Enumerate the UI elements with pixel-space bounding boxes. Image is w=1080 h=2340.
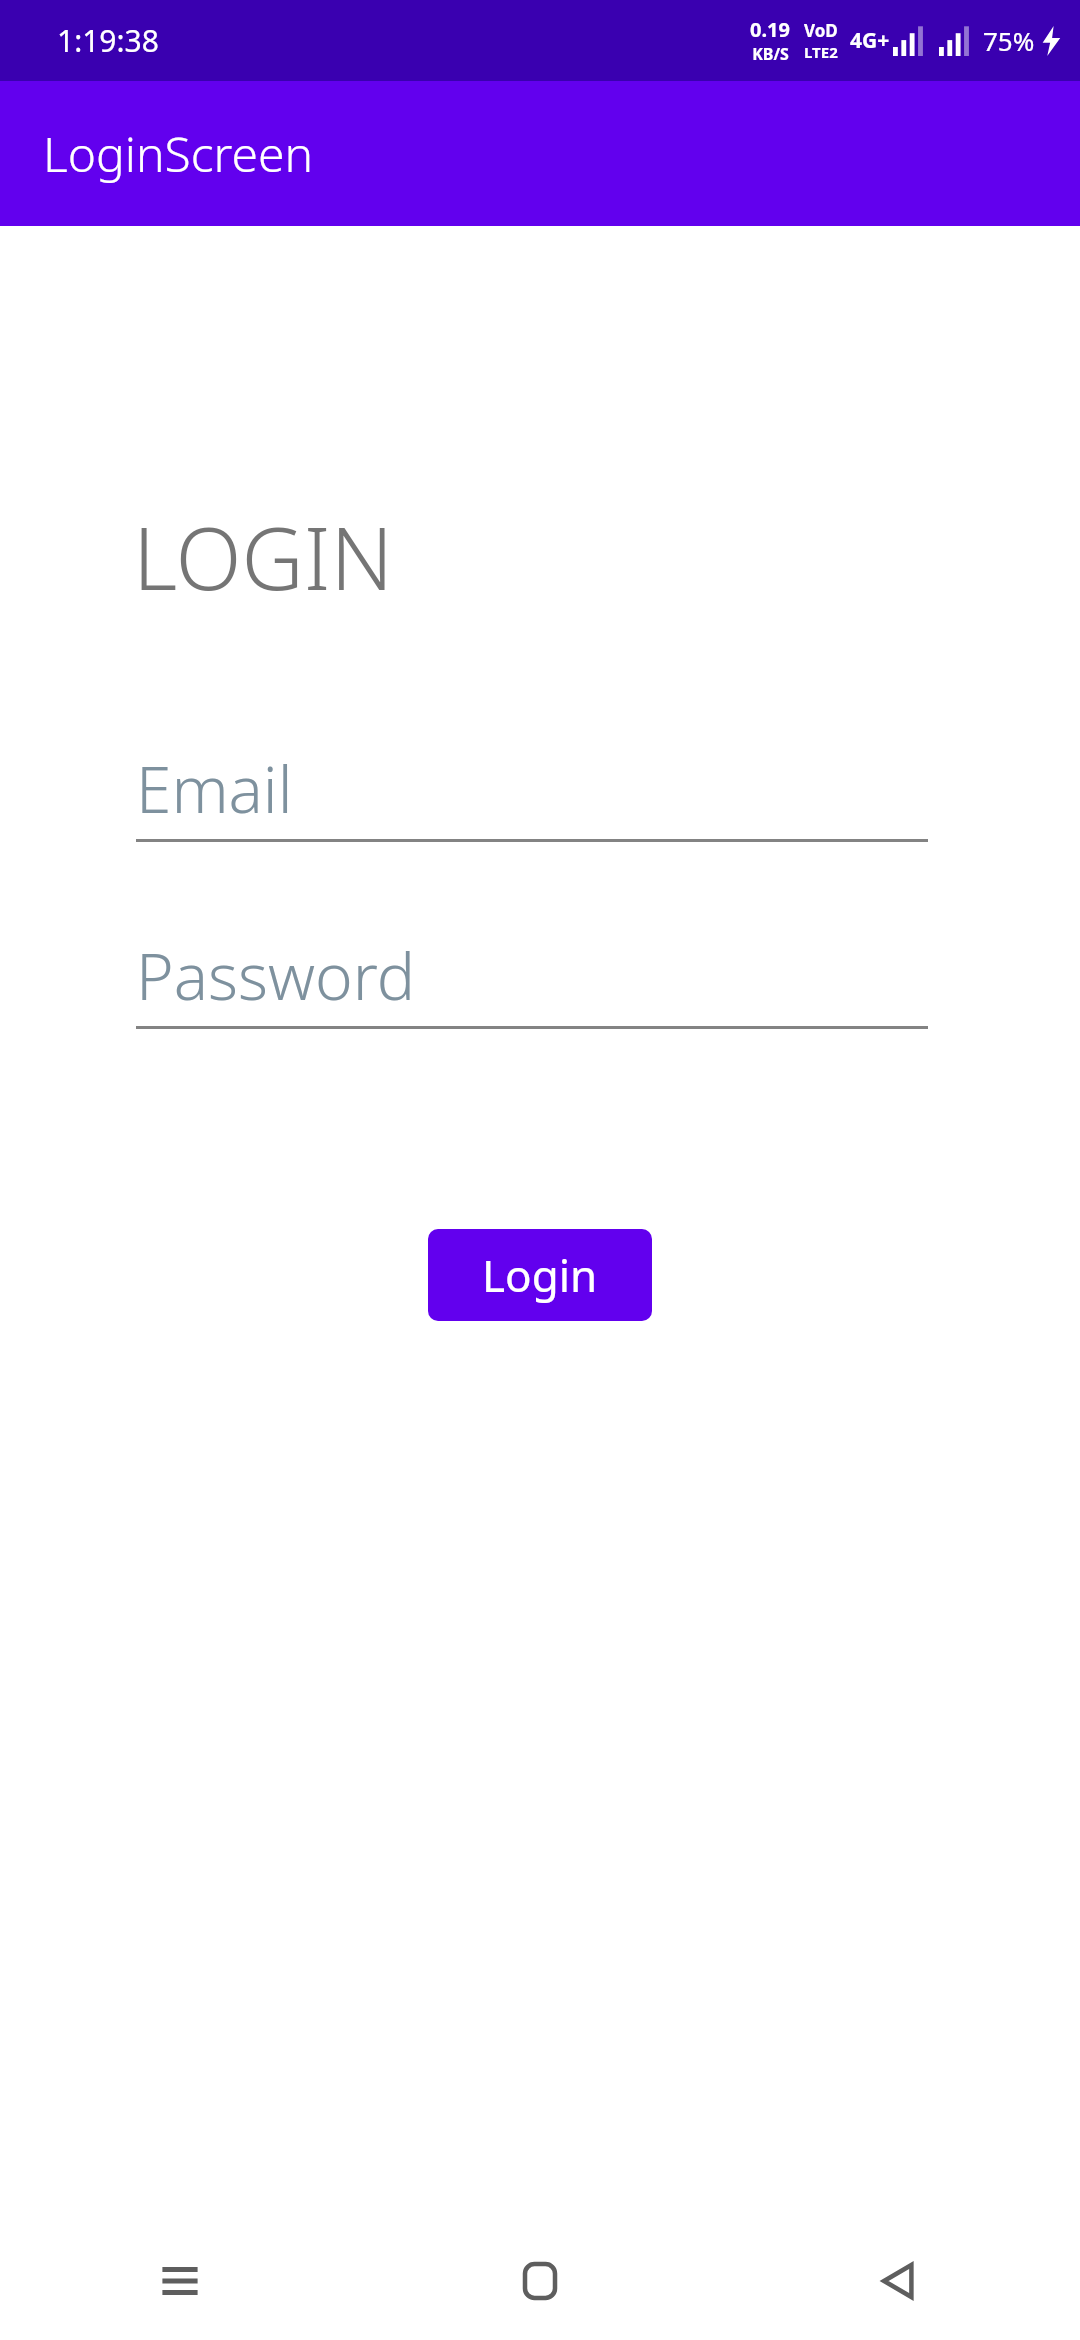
- button[interactable]: Password: [136, 932, 928, 1029]
- staticText: Email: [136, 745, 293, 823]
- button[interactable]: Back: [720, 2222, 1080, 2340]
- staticText: VoD: [804, 19, 838, 42]
- staticText: Password: [136, 932, 415, 1010]
- staticText: Login: [482, 1245, 598, 1305]
- staticText: 0.19: [750, 16, 790, 43]
- button[interactable]: Home: [360, 2222, 720, 2340]
- staticText: LOGIN: [133, 498, 394, 615]
- button[interactable]: Email: [136, 745, 928, 842]
- staticText: KB/S: [752, 43, 789, 65]
- button[interactable]: Login: [428, 1229, 652, 1321]
- staticText: 75%: [983, 23, 1035, 58]
- staticText: LoginScreen: [43, 121, 314, 186]
- staticText: 1:19:38: [57, 20, 159, 61]
- staticText: LTE2: [804, 42, 838, 62]
- staticText: 4G+: [850, 26, 890, 55]
- button[interactable]: Recent apps: [0, 2222, 360, 2340]
